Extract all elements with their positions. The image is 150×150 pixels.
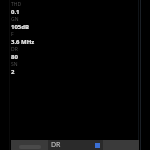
staticText: 80 — [11, 53, 18, 61]
staticText: 0.1 — [11, 8, 20, 16]
staticText: F — [11, 31, 14, 38]
staticText: 3.6 MHz — [11, 38, 35, 46]
staticText: DR — [51, 140, 61, 150]
staticText: GN — [11, 16, 19, 23]
button[interactable]: Level meter — [11, 140, 48, 150]
staticText: DR — [11, 46, 18, 53]
staticText: 2 — [11, 68, 15, 76]
staticText: 105dB — [11, 23, 30, 31]
button[interactable]: DR — [48, 140, 103, 150]
staticText: THD — [11, 1, 22, 8]
staticText: SN — [11, 61, 18, 68]
